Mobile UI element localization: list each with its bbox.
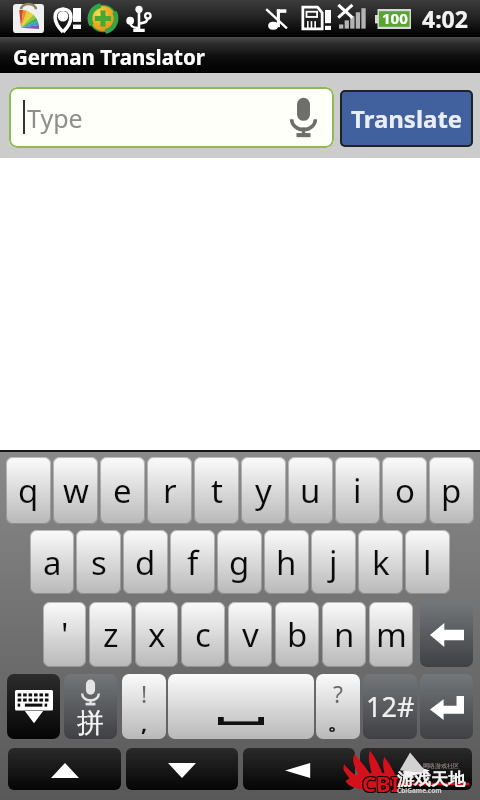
staticText: v: [242, 612, 259, 657]
button[interactable]: t: [194, 457, 239, 524]
button[interactable]: c: [181, 602, 225, 667]
button[interactable]: Type: [9, 87, 334, 148]
button[interactable]: ?: [316, 674, 360, 739]
staticText: q: [18, 468, 39, 513]
button[interactable]: e: [100, 457, 145, 524]
button[interactable]: Voice input: [64, 674, 117, 739]
button[interactable]: w: [53, 457, 98, 524]
button[interactable]: Backspace: [420, 602, 473, 667]
staticText: 。: [327, 709, 349, 737]
button[interactable]: s: [76, 530, 121, 594]
button[interactable]: n: [322, 602, 366, 667]
staticText: f: [187, 540, 199, 585]
button[interactable]: 12#: [363, 674, 417, 739]
staticText: CBI: [361, 769, 399, 799]
staticText: German Translator: [13, 43, 205, 71]
staticText: n: [334, 612, 355, 657]
button[interactable]: Translate: [340, 90, 473, 147]
staticText: r: [163, 468, 177, 513]
button[interactable]: Space: [168, 674, 314, 739]
staticText: o: [395, 468, 415, 513]
staticText: b: [287, 612, 308, 657]
button[interactable]: !: [122, 674, 166, 739]
button[interactable]: u: [288, 457, 333, 524]
staticText: CBI: [362, 768, 400, 798]
button[interactable]: v: [228, 602, 272, 667]
button[interactable]: h: [264, 530, 309, 594]
button[interactable]: Down: [126, 748, 238, 790]
staticText: x: [148, 612, 166, 657]
staticText: 网络游戏社区: [423, 762, 459, 770]
button[interactable]: Up: [8, 748, 121, 790]
staticText: g: [229, 540, 250, 585]
staticText: y: [255, 468, 272, 513]
staticText: t: [211, 468, 223, 513]
staticText: d: [135, 540, 156, 585]
button[interactable]: x: [135, 602, 178, 667]
staticText: w: [63, 468, 89, 513]
button[interactable]: Left: [243, 748, 355, 790]
staticText: CBI: [362, 767, 400, 797]
staticText: p: [441, 468, 462, 513]
staticText: 游戏天地: [397, 769, 465, 790]
staticText: CBI: [363, 769, 401, 799]
staticText: Translate: [351, 102, 463, 135]
button[interactable]: o: [382, 457, 427, 524]
button[interactable]: Hide keyboard: [7, 674, 60, 739]
button[interactable]: ': [43, 602, 86, 667]
staticText: l: [423, 540, 432, 585]
staticText: ?: [333, 678, 343, 709]
staticText: i: [353, 468, 362, 513]
staticText: z: [103, 612, 119, 657]
staticText: ': [61, 612, 69, 657]
staticText: 100: [382, 8, 408, 28]
staticText: Type: [27, 101, 83, 135]
staticText: m: [376, 612, 407, 657]
button[interactable]: k: [358, 530, 403, 594]
button[interactable]: q: [6, 457, 51, 524]
button[interactable]: y: [241, 457, 286, 524]
staticText: a: [43, 540, 62, 585]
staticText: ,: [141, 707, 148, 737]
staticText: !: [141, 678, 148, 709]
staticText: 4:02: [422, 3, 468, 34]
staticText: s: [91, 540, 107, 585]
button[interactable]: Right: [360, 748, 472, 790]
staticText: CBI: [363, 768, 401, 798]
button[interactable]: g: [217, 530, 262, 594]
staticText: CBI: [361, 768, 399, 798]
button[interactable]: l: [405, 530, 450, 594]
button[interactable]: f: [170, 530, 215, 594]
button[interactable]: d: [123, 530, 168, 594]
staticText: j: [329, 540, 338, 585]
staticText: CBI: [362, 769, 400, 799]
staticText: 12#: [366, 688, 415, 725]
staticText: k: [372, 540, 390, 585]
staticText: 拼: [77, 706, 104, 739]
staticText: CBI: [361, 767, 399, 797]
button[interactable]: b: [275, 602, 319, 667]
button[interactable]: i: [335, 457, 380, 524]
button[interactable]: Enter: [420, 674, 473, 739]
staticText: CbiGame.com: [397, 786, 442, 795]
button[interactable]: r: [147, 457, 192, 524]
staticText: h: [276, 540, 297, 585]
button[interactable]: m: [369, 602, 413, 667]
button[interactable]: p: [429, 457, 474, 524]
button[interactable]: j: [311, 530, 356, 594]
button[interactable]: z: [89, 602, 132, 667]
button[interactable]: a: [30, 530, 74, 594]
staticText: CBI: [363, 767, 401, 797]
staticText: u: [300, 468, 321, 513]
staticText: c: [195, 612, 211, 657]
staticText: e: [113, 468, 132, 513]
